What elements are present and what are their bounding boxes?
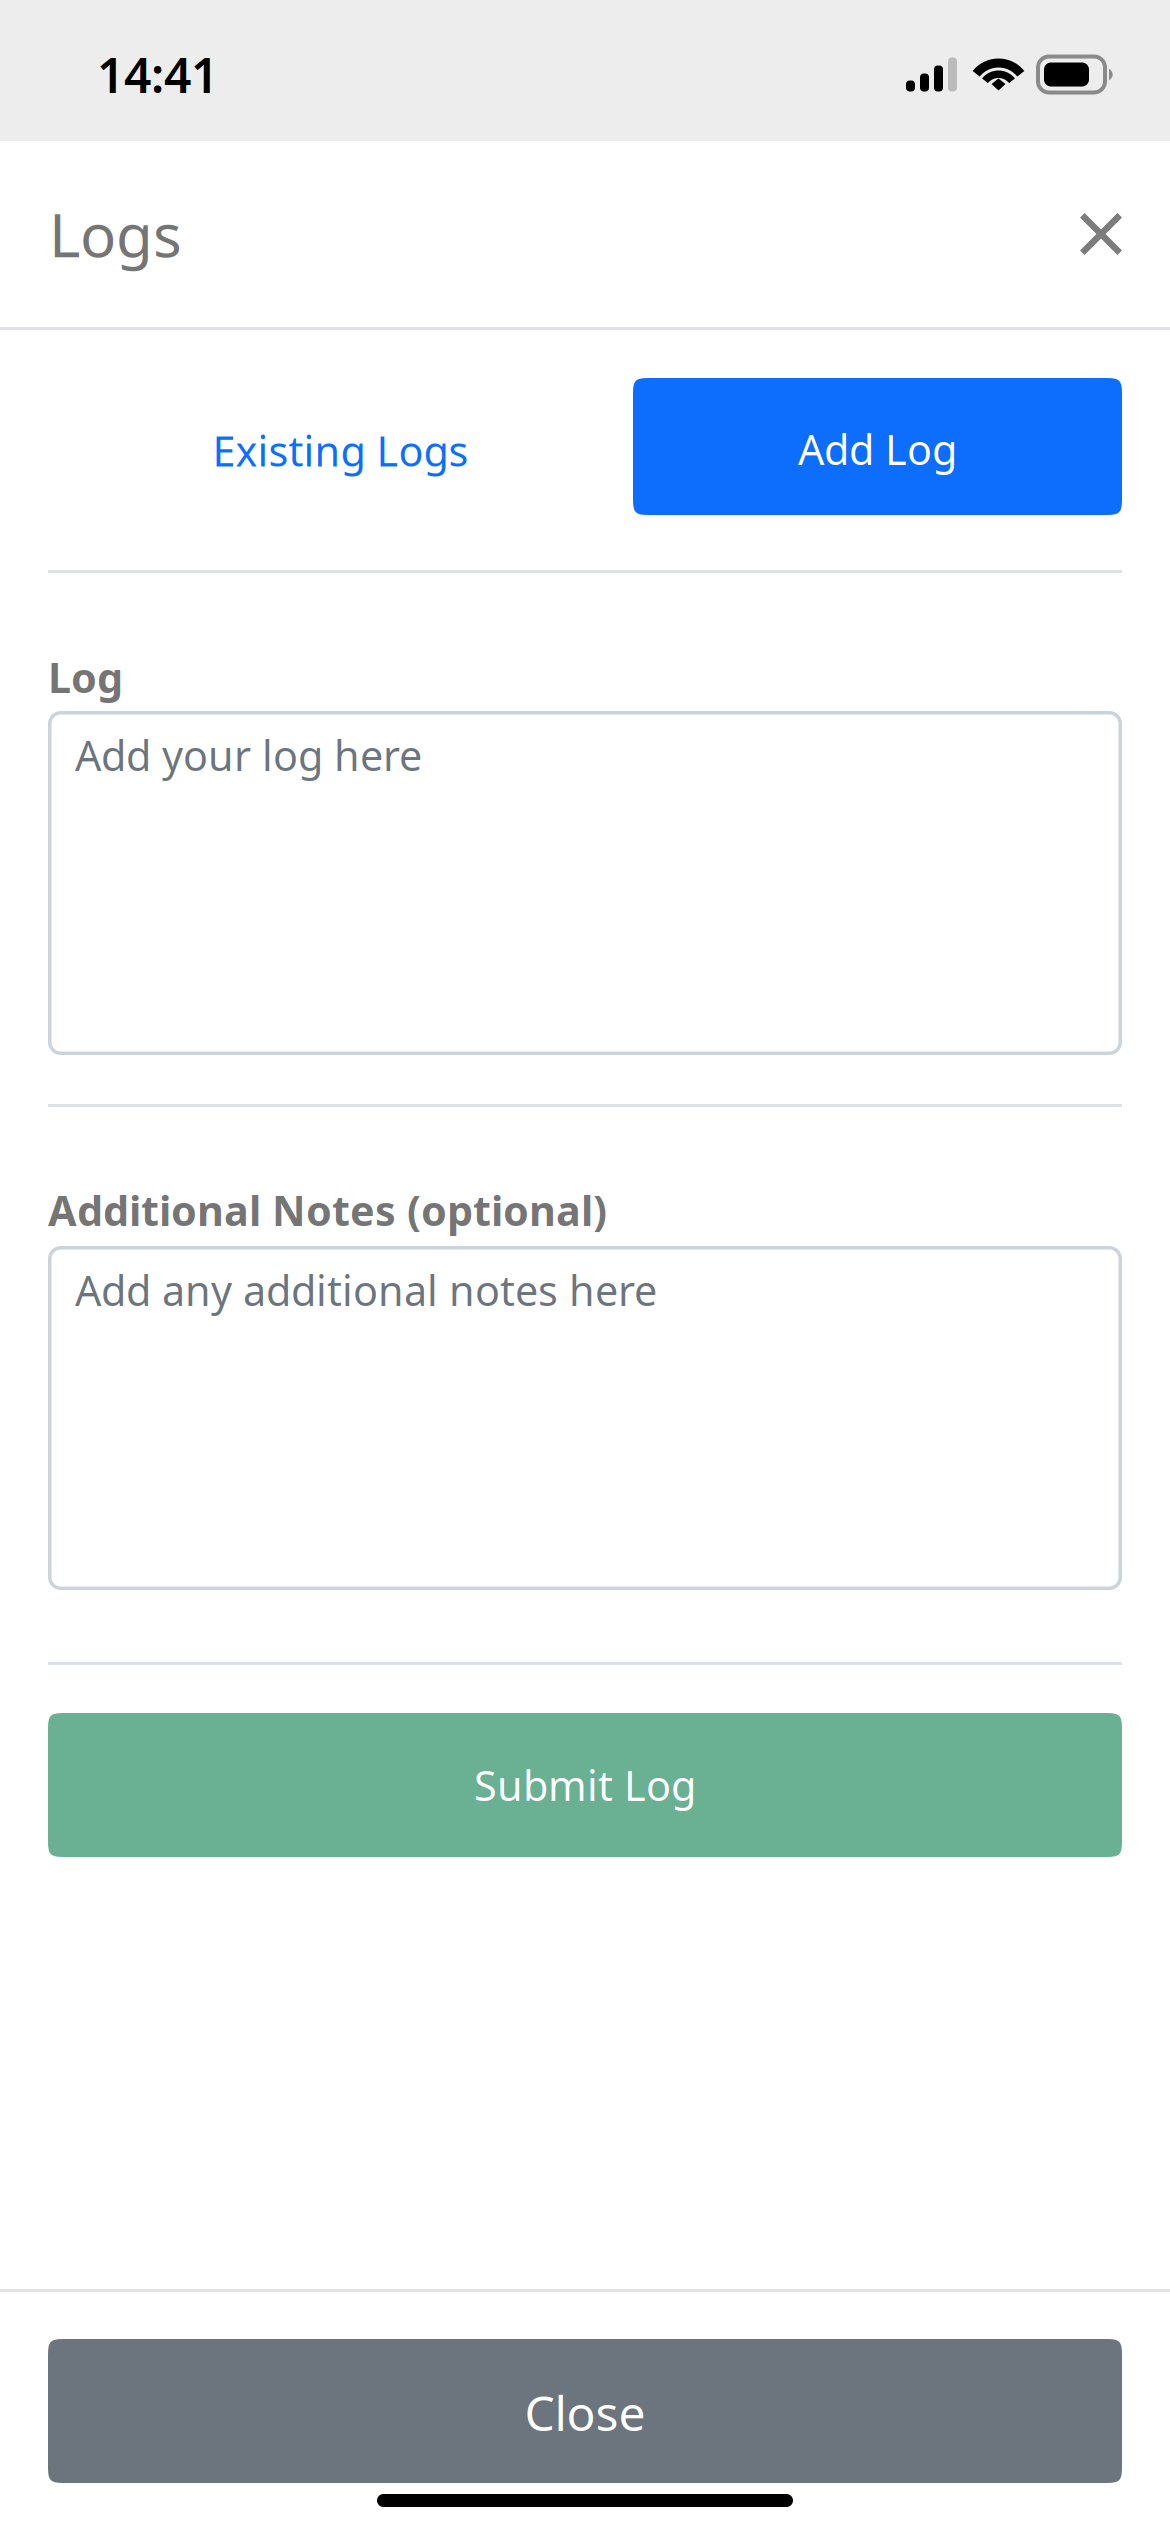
staticText: Logs (49, 194, 182, 274)
button[interactable]: Add Log (633, 378, 1122, 515)
button[interactable]: Add your log here (48, 711, 1122, 1055)
staticText: Additional Notes (optional) (48, 1183, 607, 1237)
button[interactable]: Add any additional notes here (48, 1246, 1122, 1590)
button[interactable]: Close (1053, 186, 1149, 282)
staticText: Submit Log (474, 1758, 696, 1812)
staticText: 14:41 (97, 43, 218, 106)
staticText: Close (524, 2381, 645, 2444)
button[interactable]: Close (48, 2339, 1122, 2483)
staticText: Log (48, 650, 123, 704)
staticText: Add your log here (75, 728, 422, 782)
staticText: Add Log (798, 422, 957, 476)
staticText: Add any additional notes here (75, 1263, 657, 1317)
button[interactable]: Existing Logs (48, 378, 633, 515)
staticText: Existing Logs (212, 423, 468, 478)
button[interactable]: Submit Log (48, 1713, 1122, 1857)
